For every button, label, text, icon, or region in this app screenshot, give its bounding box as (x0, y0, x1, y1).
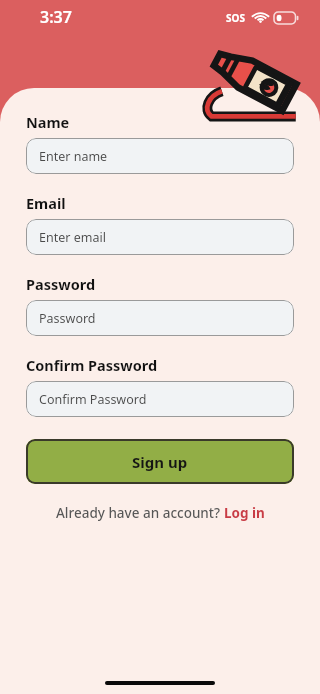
button[interactable]: Confirm Password (26, 381, 294, 417)
staticText: 3:37 (40, 6, 72, 28)
other: Ketchup bottle illustration (198, 48, 302, 124)
staticText: Confirm Password (26, 355, 158, 375)
button[interactable]: Enter email (26, 219, 294, 255)
button[interactable]: Enter name (26, 138, 294, 174)
staticText: SOS (226, 11, 245, 24)
button[interactable]: Sign up (26, 439, 294, 484)
staticText: Enter email (39, 229, 106, 246)
staticText: Password (39, 310, 96, 327)
staticText: Name (26, 112, 70, 132)
staticText: Enter name (39, 148, 108, 165)
button[interactable]: Password (26, 300, 294, 336)
staticText: Email (26, 193, 66, 213)
button[interactable]: Already have an account? (26, 504, 294, 522)
staticText: Already have an account? (56, 504, 224, 522)
staticText: Confirm Password (39, 391, 147, 408)
staticText: Sign up (132, 452, 188, 472)
staticText: Password (26, 274, 96, 294)
staticText: Log in (224, 504, 265, 522)
